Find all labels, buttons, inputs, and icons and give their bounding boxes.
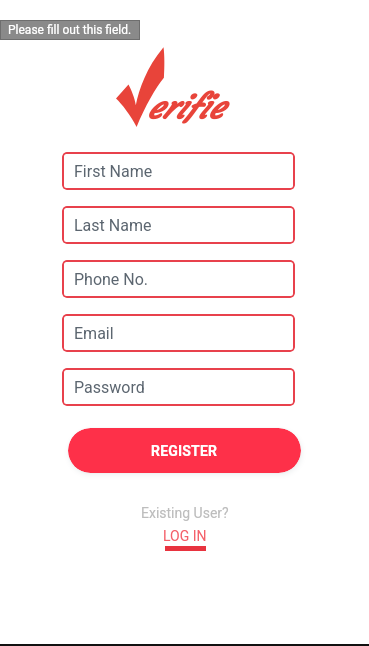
- staticText: REGISTER: [151, 443, 218, 459]
- staticText: Last Name: [74, 216, 152, 235]
- staticText: erifie: [146, 87, 223, 128]
- staticText: Please fill out this field.: [8, 23, 132, 37]
- staticText: Password: [74, 378, 145, 397]
- staticText: Email: [74, 324, 114, 343]
- staticText: First Name: [74, 162, 153, 181]
- button[interactable]: First Name: [62, 152, 295, 190]
- staticText: Phone No.: [74, 270, 149, 289]
- button[interactable]: REGISTER: [68, 428, 301, 473]
- staticText: Existing User?: [141, 505, 229, 521]
- button[interactable]: Password: [62, 368, 295, 406]
- button[interactable]: Phone No.: [62, 260, 295, 298]
- button[interactable]: Last Name: [62, 206, 295, 244]
- staticText: LOG IN: [163, 528, 207, 544]
- button[interactable]: LOG IN: [163, 528, 207, 551]
- button[interactable]: Email: [62, 314, 295, 352]
